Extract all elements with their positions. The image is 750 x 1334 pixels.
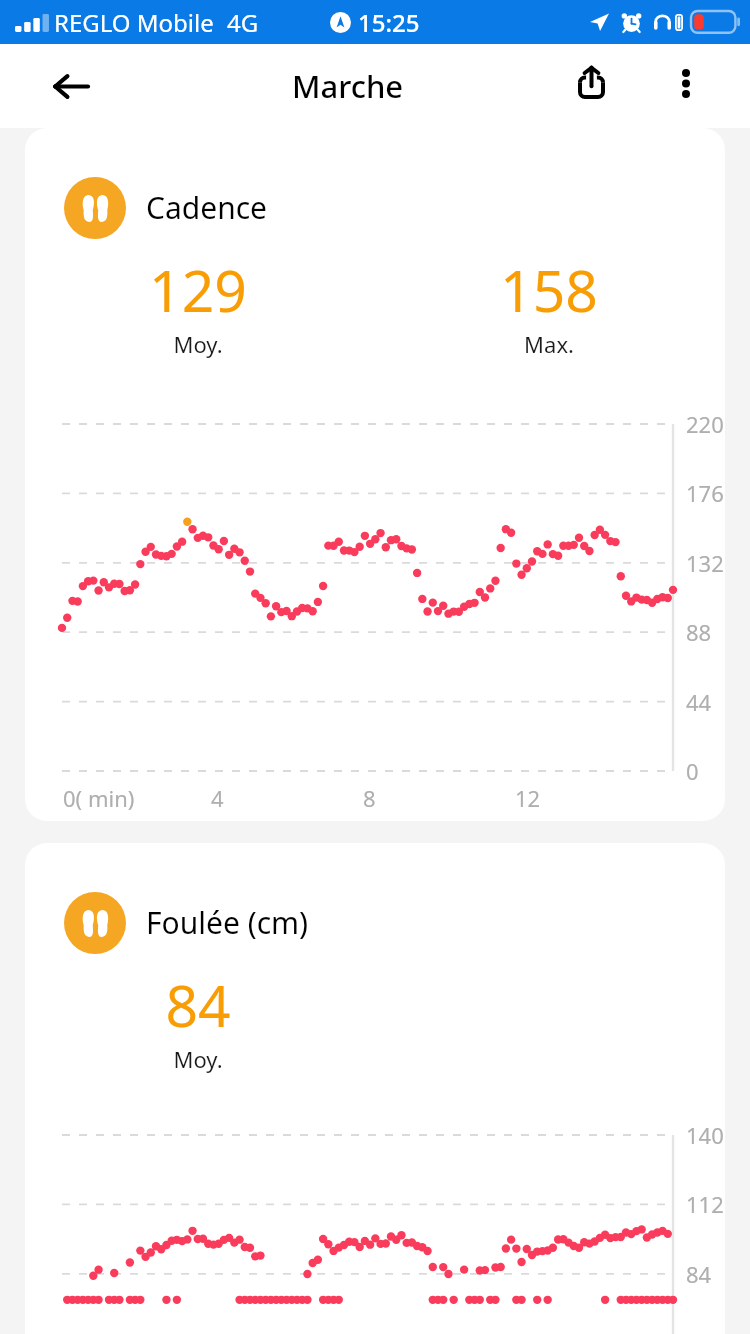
staticText: 4G bbox=[227, 6, 259, 39]
button[interactable]: Back bbox=[39, 54, 103, 118]
staticText: 140 bbox=[686, 1120, 724, 1150]
button[interactable]: More options bbox=[656, 53, 716, 113]
staticText: Moy. bbox=[173, 329, 223, 359]
button[interactable]: Share bbox=[561, 52, 621, 112]
staticText: 0 bbox=[686, 756, 699, 786]
staticText: Cadence bbox=[146, 187, 268, 228]
button[interactable]: Foulée (cm) bbox=[25, 843, 725, 1334]
staticText: 112 bbox=[686, 1189, 724, 1219]
staticText: Max. bbox=[524, 329, 574, 359]
staticText: Moy. bbox=[173, 1044, 223, 1074]
staticText: 12 bbox=[515, 783, 541, 813]
staticText: 158 bbox=[500, 251, 598, 329]
staticText: Foulée (cm) bbox=[146, 902, 309, 943]
button[interactable]: Cadence bbox=[25, 128, 725, 821]
staticText: 132 bbox=[686, 548, 724, 578]
staticText: Marche bbox=[292, 65, 404, 107]
staticText: 84 bbox=[686, 1259, 712, 1289]
staticText: 44 bbox=[686, 687, 712, 717]
staticText: 220 bbox=[686, 409, 724, 439]
staticText: 176 bbox=[686, 478, 724, 508]
staticText: 4 bbox=[211, 783, 224, 813]
staticText: REGLO Mobile bbox=[54, 6, 214, 39]
staticText: 0( min) bbox=[63, 783, 135, 813]
staticText: 129 bbox=[149, 251, 247, 329]
staticText: 15:25 bbox=[358, 6, 420, 39]
staticText: 8 bbox=[363, 783, 376, 813]
staticText: 88 bbox=[686, 617, 712, 647]
staticText: 84 bbox=[165, 966, 231, 1044]
